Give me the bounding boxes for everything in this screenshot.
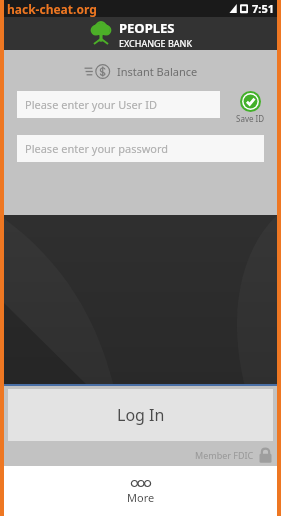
button[interactable]: Log In [8,389,273,441]
staticText: Member FDIC [195,449,254,461]
staticText: Save ID [236,113,265,124]
button[interactable]: More [4,472,277,511]
staticText: Please enter your password [25,141,169,156]
staticText: Please enter your User ID [25,97,157,112]
staticText: More [127,490,155,505]
button[interactable]: Please enter your User ID [17,91,220,118]
button[interactable]: Save ID [228,91,273,124]
staticText: 7:51 [252,1,274,16]
button[interactable]: Instant Balance [4,59,277,83]
staticText: Instant Balance [117,64,198,79]
staticText: PEOPLES [119,19,175,37]
staticText: Log In [117,404,165,426]
staticText: hack-cheat.org [7,1,97,17]
button[interactable]: Please enter your password [17,135,264,162]
staticText: EXCHANGE BANK [119,37,192,49]
